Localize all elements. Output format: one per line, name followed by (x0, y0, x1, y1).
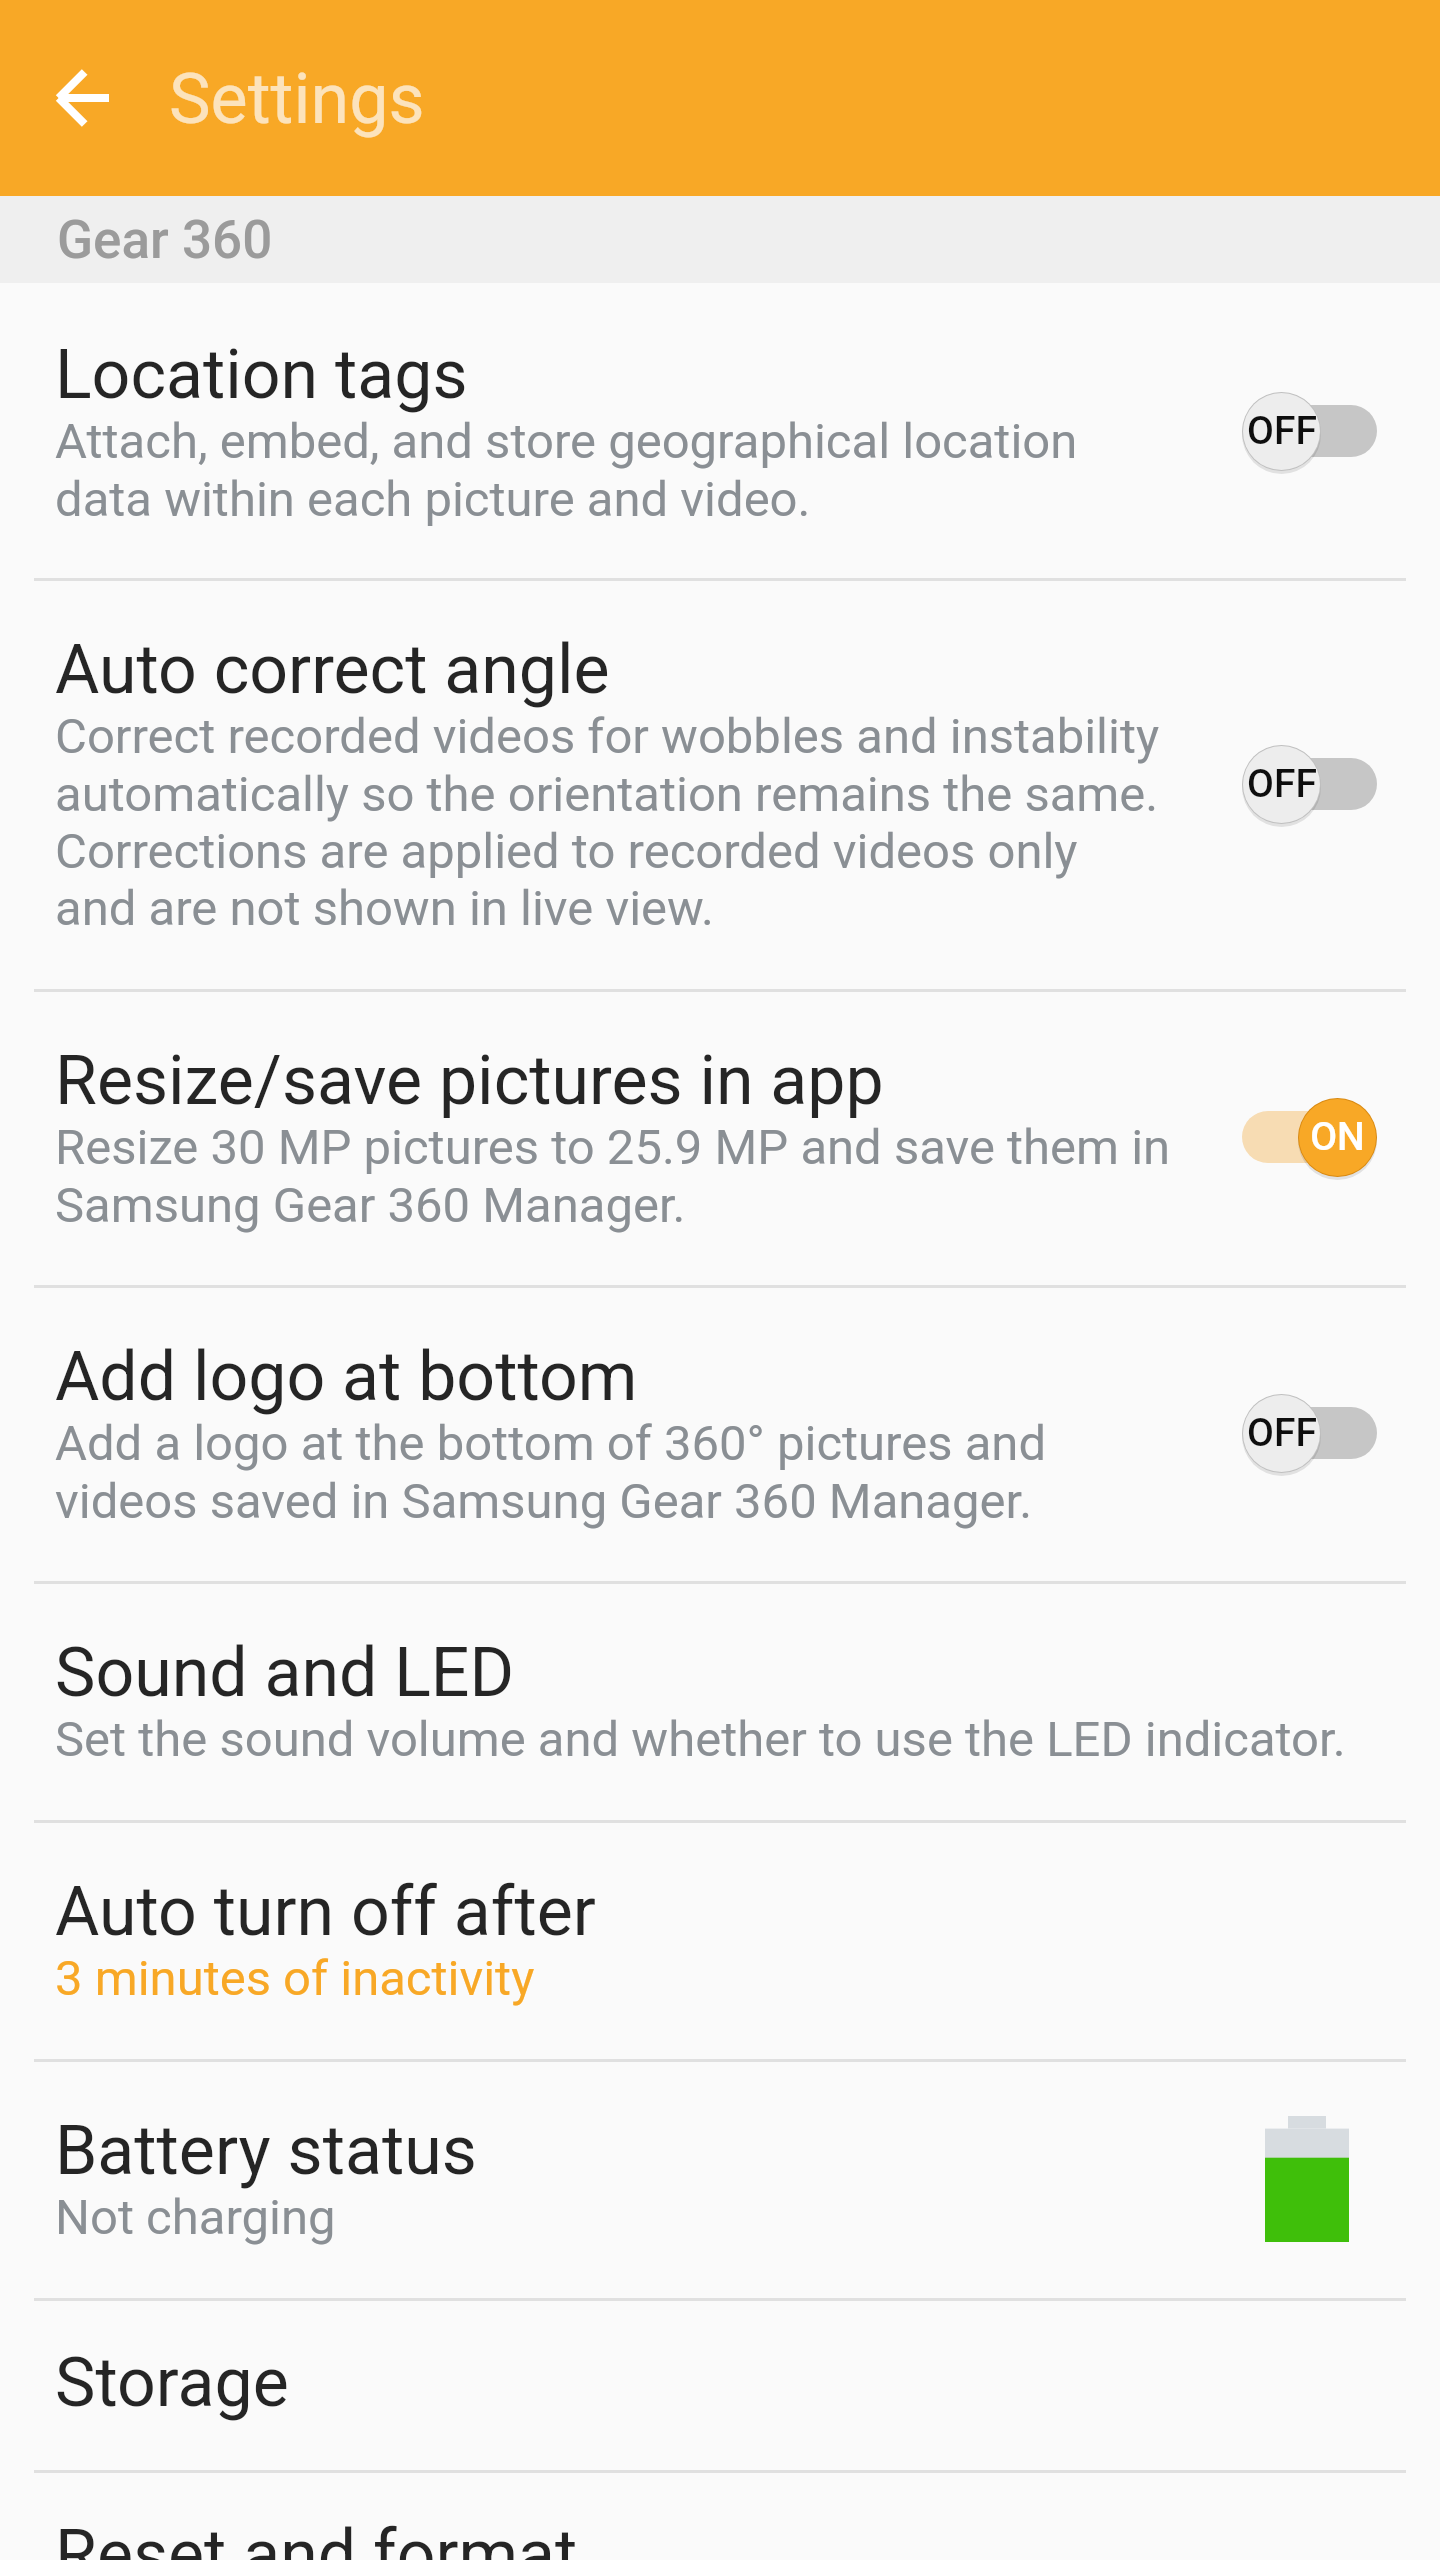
staticText: OFF (1247, 1410, 1317, 1456)
button[interactable]: Storage (0, 2298, 1440, 2470)
staticText: Resize/save pictures in app (55, 1041, 884, 1121)
button[interactable]: Resize/save pictures in app toggle, on (1242, 1094, 1377, 1180)
staticText: ON (1310, 1114, 1365, 1160)
button[interactable]: Auto turn off after (0, 1820, 1440, 2059)
staticText: Location tags (55, 335, 468, 415)
staticText: Not charging (55, 2189, 336, 2246)
button[interactable]: Battery status (0, 2059, 1440, 2298)
staticText: OFF (1247, 408, 1317, 454)
button[interactable]: Back (25, 42, 137, 154)
staticText: Auto correct angle (55, 630, 610, 710)
staticText: Resize 30 MP pictures to 25.9 MP and sav… (55, 1119, 1171, 1233)
staticText: Storage (55, 2343, 289, 2423)
staticText: Add logo at bottom (55, 1337, 638, 1417)
button[interactable]: Add logo at bottom (0, 1285, 1440, 1581)
button[interactable]: Auto correct angle (0, 578, 1440, 989)
button[interactable]: Location tags toggle, off (1242, 388, 1377, 474)
staticText: Settings (169, 58, 425, 140)
staticText: Auto turn off after (55, 1872, 596, 1952)
staticText: Attach, embed, and store geographical lo… (55, 413, 1078, 527)
staticText: 3 minutes of inactivity (55, 1950, 535, 2007)
staticText: Sound and LED (55, 1633, 515, 1713)
staticText: Battery status (55, 2111, 477, 2191)
staticText: Correct recorded videos for wobbles and … (55, 708, 1160, 936)
button[interactable]: Sound and LED (0, 1581, 1440, 1820)
staticText: Reset and format (55, 2515, 578, 2560)
staticText: Add a logo at the bottom of 360° picture… (55, 1415, 1047, 1529)
other: Battery level (1265, 2116, 1349, 2242)
staticText: Gear 360 (57, 209, 273, 271)
button[interactable]: Auto correct angle toggle, off (1242, 741, 1377, 827)
button[interactable]: Reset and format (0, 2470, 1440, 2560)
staticText: Set the sound volume and whether to use … (55, 1711, 1346, 1768)
button[interactable]: Location tags (0, 283, 1440, 578)
button[interactable]: Resize/save pictures in app (0, 989, 1440, 1285)
staticText: OFF (1247, 761, 1317, 807)
button[interactable]: Add logo at bottom toggle, off (1242, 1390, 1377, 1476)
